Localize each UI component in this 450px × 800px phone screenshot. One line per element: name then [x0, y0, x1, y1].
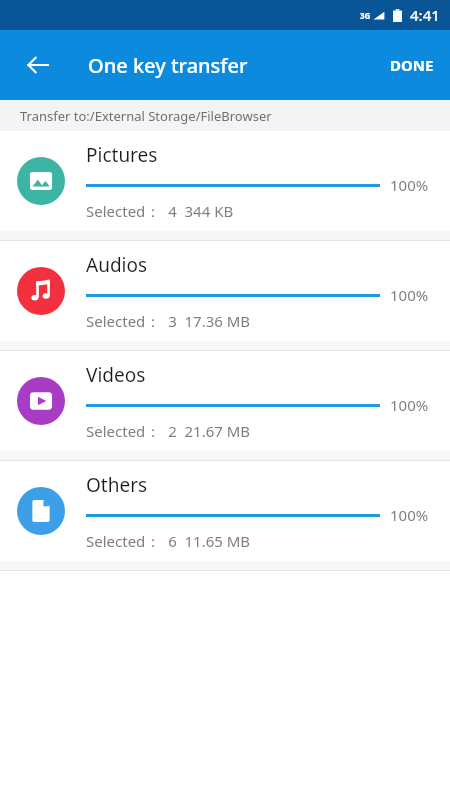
staticText: Selected： 6 11.65 MB: [86, 531, 251, 551]
staticText: Selected： 3 17.36 MB: [86, 311, 251, 331]
staticText: Others: [86, 472, 148, 498]
staticText: Transfer to:/External Storage/FileBrowse…: [20, 107, 272, 125]
button[interactable]: Videos: [0, 351, 450, 451]
staticText: 100%: [390, 285, 438, 305]
button[interactable]: Back: [14, 41, 62, 89]
staticText: Videos: [86, 362, 146, 388]
button[interactable]: DONE: [374, 30, 450, 100]
button[interactable]: Pictures: [0, 131, 450, 231]
staticText: One key transfer: [88, 52, 248, 79]
staticText: Selected： 4 344 KB: [86, 201, 234, 221]
staticText: DONE: [390, 55, 434, 75]
staticText: Selected： 2 21.67 MB: [86, 421, 251, 441]
staticText: Pictures: [86, 142, 158, 168]
button[interactable]: Others: [0, 461, 450, 561]
staticText: 100%: [390, 395, 438, 415]
staticText: 3G: [360, 10, 371, 21]
button[interactable]: Audios: [0, 241, 450, 341]
staticText: 4:41: [410, 5, 440, 25]
staticText: 100%: [390, 175, 438, 195]
staticText: 100%: [390, 505, 438, 525]
staticText: Audios: [86, 252, 148, 278]
